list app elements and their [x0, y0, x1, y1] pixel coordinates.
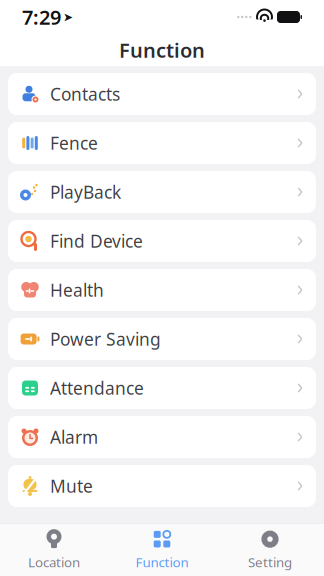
button[interactable]: Location [0, 526, 108, 574]
button[interactable]: Contacts [8, 73, 316, 115]
button[interactable]: Function [108, 526, 216, 574]
staticText: Contacts [50, 82, 120, 105]
button[interactable]: Attendance [8, 367, 316, 409]
button[interactable]: PlayBack [8, 171, 316, 213]
button[interactable]: Health [8, 269, 316, 311]
button[interactable]: Mute [8, 465, 316, 507]
button[interactable]: Setting [216, 526, 324, 574]
staticText: Find Device [50, 229, 143, 252]
staticText: Health [50, 278, 104, 301]
button[interactable]: Find Device [8, 220, 316, 262]
staticText: Location [28, 553, 80, 571]
button[interactable]: Power Saving [8, 318, 316, 360]
staticText: Function [135, 553, 188, 571]
staticText: Attendance [50, 376, 144, 399]
staticText: Fence [50, 131, 98, 154]
staticText: 7:29 [22, 4, 61, 30]
staticText: Mute [50, 474, 93, 497]
staticText: Setting [248, 553, 292, 571]
button[interactable]: Fence [8, 122, 316, 164]
staticText: Function [119, 37, 205, 63]
button[interactable]: Alarm [8, 416, 316, 458]
staticText: Alarm [50, 425, 98, 448]
staticText: PlayBack [50, 180, 121, 203]
staticText: Power Saving [50, 327, 161, 350]
staticText: ➤ [63, 10, 73, 24]
